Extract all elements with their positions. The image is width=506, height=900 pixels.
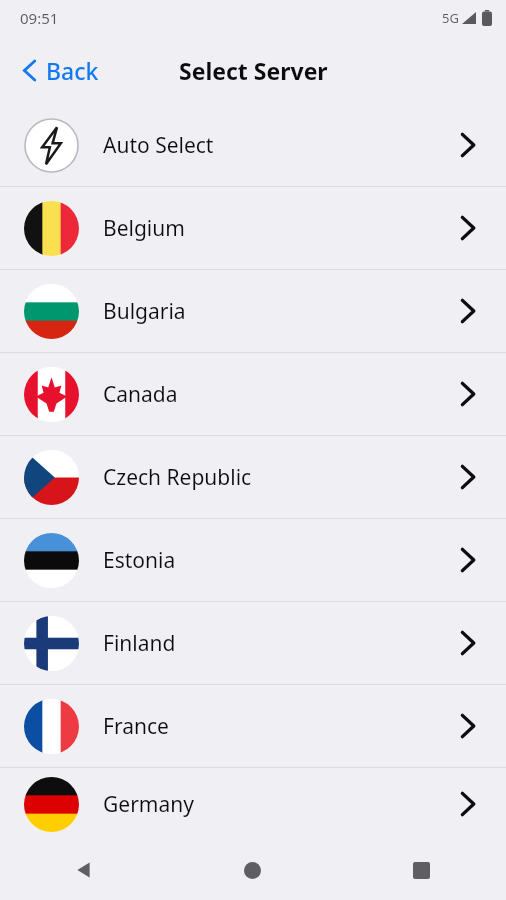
staticText: France: [103, 712, 460, 741]
staticText: Back: [46, 55, 99, 86]
button[interactable]: Auto Select: [0, 104, 506, 186]
button[interactable]: Belgium: [0, 187, 506, 269]
staticText: Select Server: [179, 55, 328, 86]
staticText: 5G: [442, 9, 459, 27]
button[interactable]: Back: [0, 840, 168, 900]
staticText: Czech Republic: [103, 463, 460, 492]
button[interactable]: Back: [14, 49, 107, 92]
button[interactable]: Czech Republic: [0, 436, 506, 518]
button[interactable]: Germany: [0, 768, 506, 840]
staticText: 09:51: [20, 8, 59, 28]
staticText: Germany: [103, 790, 460, 819]
button[interactable]: Finland: [0, 602, 506, 684]
button[interactable]: France: [0, 685, 506, 767]
staticText: Belgium: [103, 214, 460, 243]
staticText: Canada: [103, 380, 460, 409]
staticText: Auto Select: [103, 131, 460, 160]
staticText: Finland: [103, 629, 460, 658]
staticText: Bulgaria: [103, 297, 460, 326]
button[interactable]: Bulgaria: [0, 270, 506, 352]
button[interactable]: Recent apps: [337, 840, 506, 900]
button[interactable]: Canada: [0, 353, 506, 435]
button[interactable]: Home: [168, 840, 337, 900]
staticText: Estonia: [103, 546, 460, 575]
button[interactable]: Estonia: [0, 519, 506, 601]
